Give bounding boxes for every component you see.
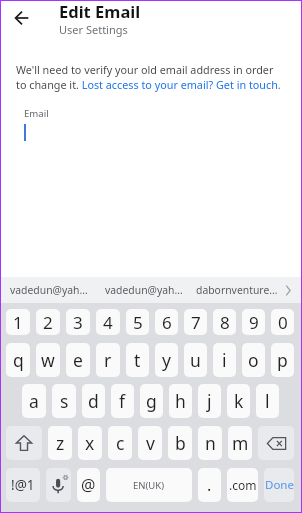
staticText: h: [175, 389, 186, 413]
button[interactable]: .: [198, 468, 221, 502]
button[interactable]: Backspace: [258, 426, 294, 460]
staticText: .: [207, 474, 212, 496]
staticText: 7: [191, 311, 201, 334]
button[interactable]: @: [77, 468, 100, 502]
button[interactable]: 9: [242, 309, 265, 335]
staticText: 8: [220, 311, 230, 334]
staticText: s: [60, 389, 69, 413]
staticText: 6: [162, 311, 172, 334]
button[interactable]: d: [82, 384, 105, 418]
button[interactable]: a: [22, 384, 46, 418]
button[interactable]: k: [227, 384, 250, 418]
button[interactable]: vadedun@yah…: [1, 277, 96, 303]
staticText: d: [88, 389, 99, 413]
button[interactable]: vadedun@yah…: [96, 277, 191, 303]
button[interactable]: p: [271, 343, 294, 377]
button[interactable]: o: [242, 343, 265, 377]
button[interactable]: g: [140, 384, 163, 418]
staticText: x: [85, 431, 95, 455]
button[interactable]: 1: [6, 309, 30, 335]
button[interactable]: 6: [155, 309, 178, 335]
staticText: z: [56, 431, 65, 455]
staticText: p: [277, 348, 288, 372]
staticText: We'll need to verify your old email addr…: [16, 62, 283, 92]
staticText: EN(UK): [133, 479, 165, 492]
button[interactable]: .com: [227, 468, 258, 502]
staticText: 5: [133, 311, 143, 334]
button[interactable]: Back: [12, 3, 31, 33]
button[interactable]: i: [213, 343, 236, 377]
button[interactable]: 5: [126, 309, 149, 335]
staticText: t: [134, 348, 141, 372]
button[interactable]: m: [228, 426, 252, 460]
staticText: e: [73, 348, 83, 372]
staticText: vadedun@yah…: [10, 283, 88, 297]
staticText: User Settings: [59, 22, 128, 37]
button[interactable]: Voice input: [46, 468, 71, 502]
button[interactable]: dabornventure…: [191, 277, 283, 303]
staticText: 3: [73, 311, 83, 334]
button[interactable]: n: [198, 426, 222, 460]
staticText: q: [13, 348, 24, 372]
staticText: n: [205, 431, 216, 455]
button[interactable]: More suggestions: [283, 277, 293, 303]
button[interactable]: y: [155, 343, 178, 377]
button[interactable]: x: [78, 426, 102, 460]
staticText: f: [119, 389, 126, 413]
button[interactable]: q: [6, 343, 30, 377]
button[interactable]: 3: [66, 309, 90, 335]
button[interactable]: 2: [36, 309, 60, 335]
staticText: j: [207, 389, 212, 413]
button[interactable]: b: [168, 426, 192, 460]
button[interactable]: 4: [96, 309, 120, 335]
staticText: 0: [278, 311, 288, 334]
staticText: Done: [265, 477, 294, 493]
staticText: u: [190, 348, 201, 372]
button[interactable]: 7: [184, 309, 207, 335]
button[interactable]: w: [36, 343, 60, 377]
staticText: 9: [249, 311, 259, 334]
staticText: w: [41, 348, 55, 372]
staticText: b: [175, 431, 186, 455]
button[interactable]: 0: [271, 309, 294, 335]
button[interactable]: e: [66, 343, 90, 377]
staticText: Email: [24, 107, 49, 120]
staticText: 2: [43, 311, 53, 334]
button[interactable]: c: [108, 426, 132, 460]
staticText: o: [248, 348, 259, 372]
button[interactable]: z: [48, 426, 72, 460]
staticText: Edit Email: [59, 0, 141, 22]
staticText: @: [81, 474, 96, 496]
button[interactable]: j: [198, 384, 221, 418]
button[interactable]: Shift: [6, 426, 42, 460]
button[interactable]: EN(UK): [106, 468, 192, 502]
staticText: !@1: [11, 476, 35, 494]
button[interactable]: h: [169, 384, 192, 418]
staticText: dabornventure…: [196, 283, 278, 297]
button[interactable]: s: [52, 384, 76, 418]
staticText: y: [162, 348, 171, 372]
staticText: l: [265, 389, 270, 413]
staticText: vadedun@yah…: [105, 283, 183, 297]
button[interactable]: l: [256, 384, 279, 418]
staticText: a: [29, 389, 39, 413]
staticText: .com: [229, 477, 257, 493]
button[interactable]: !@1: [6, 468, 40, 502]
staticText: v: [146, 431, 155, 455]
staticText: 1: [13, 311, 23, 334]
staticText: r: [104, 348, 112, 372]
staticText: m: [232, 431, 249, 455]
button[interactable]: t: [126, 343, 149, 377]
button[interactable]: Done: [264, 468, 294, 502]
staticText: k: [234, 389, 244, 413]
staticText: 4: [103, 311, 113, 334]
staticText: g: [146, 389, 157, 413]
button[interactable]: v: [138, 426, 162, 460]
button[interactable]: r: [96, 343, 120, 377]
staticText: i: [222, 348, 227, 372]
button[interactable]: u: [184, 343, 207, 377]
staticText: c: [116, 431, 125, 455]
button[interactable]: f: [111, 384, 134, 418]
button[interactable]: 8: [213, 309, 236, 335]
